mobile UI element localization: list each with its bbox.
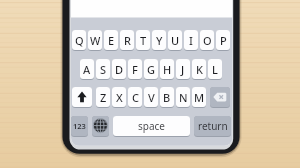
staticText: C bbox=[132, 90, 139, 105]
staticText: Q bbox=[75, 33, 84, 48]
button[interactable] bbox=[72, 87, 92, 108]
button[interactable] bbox=[92, 116, 109, 137]
button[interactable]: S bbox=[96, 59, 110, 80]
staticText: I bbox=[189, 33, 193, 48]
button[interactable]: O bbox=[200, 30, 214, 51]
button[interactable]: N bbox=[176, 87, 190, 108]
staticText: O bbox=[203, 33, 212, 48]
button[interactable]: K bbox=[192, 59, 206, 80]
staticText: J bbox=[181, 62, 185, 77]
staticText: space bbox=[138, 119, 165, 133]
staticText: F bbox=[132, 62, 138, 77]
button[interactable]: P bbox=[216, 30, 230, 51]
button[interactable]: F bbox=[128, 59, 142, 80]
button[interactable]: Y bbox=[152, 30, 166, 51]
staticText: L bbox=[212, 62, 218, 77]
staticText: M bbox=[194, 90, 205, 105]
button[interactable]: G bbox=[144, 59, 158, 80]
button[interactable]: space bbox=[113, 116, 190, 137]
button[interactable]: E bbox=[104, 30, 118, 51]
staticText: V bbox=[148, 90, 155, 105]
staticText: T bbox=[140, 33, 147, 48]
staticText: Z bbox=[100, 90, 107, 105]
staticText: D bbox=[115, 62, 124, 77]
staticText: H bbox=[163, 62, 172, 77]
button[interactable] bbox=[210, 87, 230, 108]
button[interactable]: T bbox=[136, 30, 150, 51]
button[interactable]: 123 bbox=[71, 116, 88, 137]
button[interactable]: J bbox=[176, 59, 190, 80]
button[interactable]: C bbox=[128, 87, 142, 108]
button[interactable]: X bbox=[112, 87, 126, 108]
staticText: S bbox=[100, 62, 107, 77]
staticText: A bbox=[83, 62, 91, 77]
staticText: P bbox=[220, 33, 227, 48]
staticText: E bbox=[108, 33, 115, 48]
button[interactable]: return bbox=[194, 116, 231, 137]
staticText: N bbox=[179, 90, 188, 105]
staticText: B bbox=[163, 90, 171, 105]
button[interactable]: A bbox=[80, 59, 94, 80]
button[interactable]: L bbox=[208, 59, 222, 80]
button[interactable]: I bbox=[184, 30, 198, 51]
staticText: 123 bbox=[73, 121, 86, 131]
button[interactable]: D bbox=[112, 59, 126, 80]
staticText: W bbox=[90, 33, 101, 48]
button[interactable]: U bbox=[168, 30, 182, 51]
staticText: R bbox=[124, 33, 131, 48]
button[interactable]: Z bbox=[96, 87, 110, 108]
button[interactable]: W bbox=[88, 30, 102, 51]
staticText: X bbox=[116, 90, 123, 105]
button[interactable]: V bbox=[144, 87, 158, 108]
staticText: U bbox=[171, 33, 180, 48]
button[interactable]: M bbox=[192, 87, 206, 108]
button[interactable]: H bbox=[160, 59, 174, 80]
button[interactable]: R bbox=[120, 30, 134, 51]
staticText: Y bbox=[156, 33, 163, 48]
staticText: G bbox=[147, 62, 155, 77]
staticText: return bbox=[198, 119, 228, 133]
button[interactable]: Q bbox=[72, 30, 86, 51]
staticText: K bbox=[196, 62, 203, 77]
button[interactable]: B bbox=[160, 87, 174, 108]
